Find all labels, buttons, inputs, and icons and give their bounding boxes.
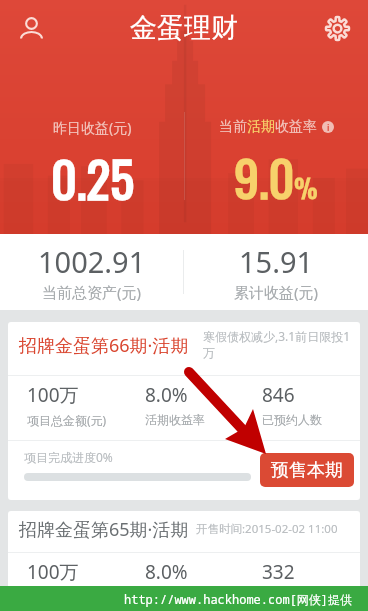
staticText: 846: [262, 382, 295, 408]
staticText: 8.0%: [145, 559, 188, 585]
staticText: 9.0%: [234, 139, 318, 213]
button[interactable]: 预售本期: [260, 453, 354, 487]
staticText: 0.25: [51, 140, 134, 214]
staticText: 1002.91: [38, 242, 146, 281]
button[interactable]: 招牌金蛋第66期·活期: [8, 322, 360, 500]
staticText: 招牌金蛋第66期·活期: [19, 333, 189, 358]
staticText: 100万: [27, 559, 79, 585]
staticText: i: [327, 122, 330, 133]
staticText: 8.0%: [145, 382, 188, 408]
staticText: 100万: [27, 382, 79, 408]
staticText: 当前总资产(元): [42, 282, 142, 302]
button[interactable]: Settings: [318, 9, 356, 47]
staticText: 332: [262, 559, 295, 585]
staticText: http://www.hackhome.com[网侠]提供: [124, 591, 353, 607]
staticText: 昨日收益(元): [53, 118, 132, 137]
staticText: 金蛋理财: [130, 11, 238, 45]
staticText: 寒假债权减少,3.1前日限投1 万: [203, 328, 351, 361]
staticText: 已预约人数: [262, 412, 322, 427]
button[interactable]: 招牌金蛋第65期·活期: [8, 511, 360, 611]
staticText: 15.91: [239, 242, 314, 281]
staticText: 项目总金额(元): [27, 412, 107, 428]
staticText: 招牌金蛋第65期·活期: [19, 517, 189, 542]
staticText: 累计收益(元): [234, 282, 319, 302]
staticText: 项目完成进度0%: [24, 449, 113, 465]
staticText: 活期收益率: [145, 589, 205, 604]
staticText: 当前活期收益率: [219, 118, 317, 136]
staticText: 活期收益率: [145, 412, 205, 427]
staticText: 已预约人数: [262, 589, 322, 604]
staticText: 预售本期: [271, 459, 343, 482]
button[interactable]: Profile: [12, 9, 50, 47]
staticText: 开售时间:2015-02-02 11:00: [196, 521, 338, 537]
